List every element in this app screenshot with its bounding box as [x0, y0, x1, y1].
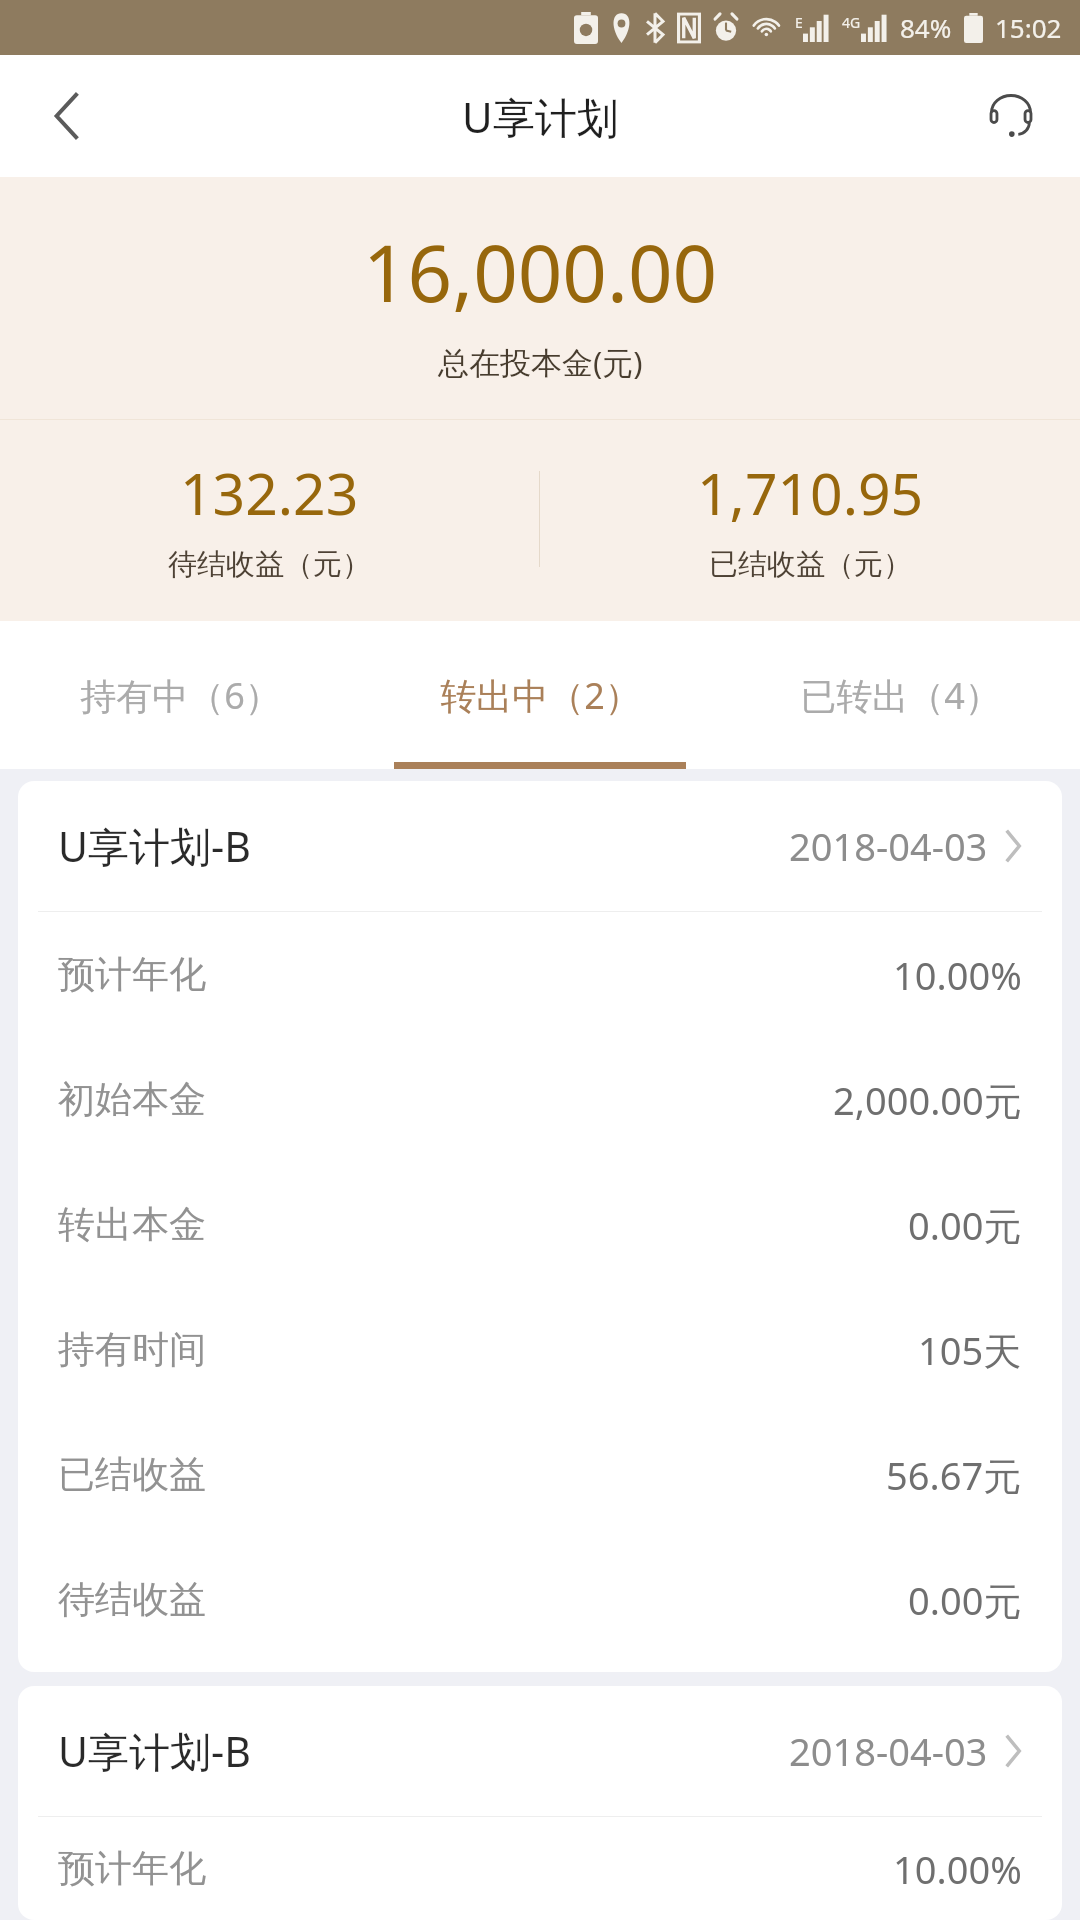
- staticText: 转出中（2）: [440, 671, 641, 720]
- staticText: 132.23: [180, 454, 359, 532]
- staticText: 持有中（6）: [80, 671, 281, 720]
- staticText: E: [795, 13, 803, 32]
- staticText: U享计划: [462, 88, 619, 145]
- staticText: 4G: [842, 13, 861, 32]
- staticText: U享计划-B: [58, 818, 251, 874]
- staticText: 已转出（4）: [800, 671, 1001, 720]
- button[interactable]: Back: [24, 73, 110, 159]
- staticText: 2018-04-03: [789, 820, 988, 872]
- staticText: 16,000.00: [363, 219, 718, 325]
- staticText: 持有时间: [58, 1326, 206, 1373]
- staticText: 转出本金: [58, 1201, 206, 1248]
- staticText: 0.00元: [908, 1574, 1022, 1626]
- staticText: 总在投本金(元): [438, 341, 643, 383]
- staticText: 预计年化: [58, 1845, 206, 1892]
- button[interactable]: 转出中（2）: [360, 621, 720, 769]
- staticText: 已结收益（元）: [709, 546, 912, 583]
- button[interactable]: 持有中（6）: [0, 621, 360, 769]
- staticText: 10.00%: [893, 1843, 1022, 1895]
- staticText: 15:02: [995, 10, 1062, 45]
- button[interactable]: 132.23: [0, 454, 539, 583]
- staticText: 10.00%: [893, 949, 1022, 1001]
- staticText: 2018-04-03: [789, 1725, 988, 1777]
- staticText: 1,710.95: [697, 454, 924, 532]
- staticText: U享计划-B: [58, 1723, 251, 1779]
- button[interactable]: Customer service: [968, 73, 1054, 159]
- staticText: 0.00元: [908, 1199, 1022, 1251]
- staticText: 初始本金: [58, 1076, 206, 1123]
- button[interactable]: U享计划-B: [18, 1686, 1062, 1920]
- staticText: 84%: [900, 10, 952, 45]
- staticText: 待结收益: [58, 1576, 206, 1623]
- staticText: 56.67元: [886, 1449, 1022, 1501]
- button[interactable]: 1,710.95: [540, 454, 1080, 583]
- staticText: 105天: [918, 1324, 1022, 1376]
- button[interactable]: U享计划-B: [18, 781, 1062, 1672]
- button[interactable]: 已转出（4）: [720, 621, 1080, 769]
- staticText: 预计年化: [58, 951, 206, 998]
- staticText: 2,000.00元: [833, 1074, 1022, 1126]
- staticText: 待结收益（元）: [168, 546, 371, 583]
- staticText: 已结收益: [58, 1451, 206, 1498]
